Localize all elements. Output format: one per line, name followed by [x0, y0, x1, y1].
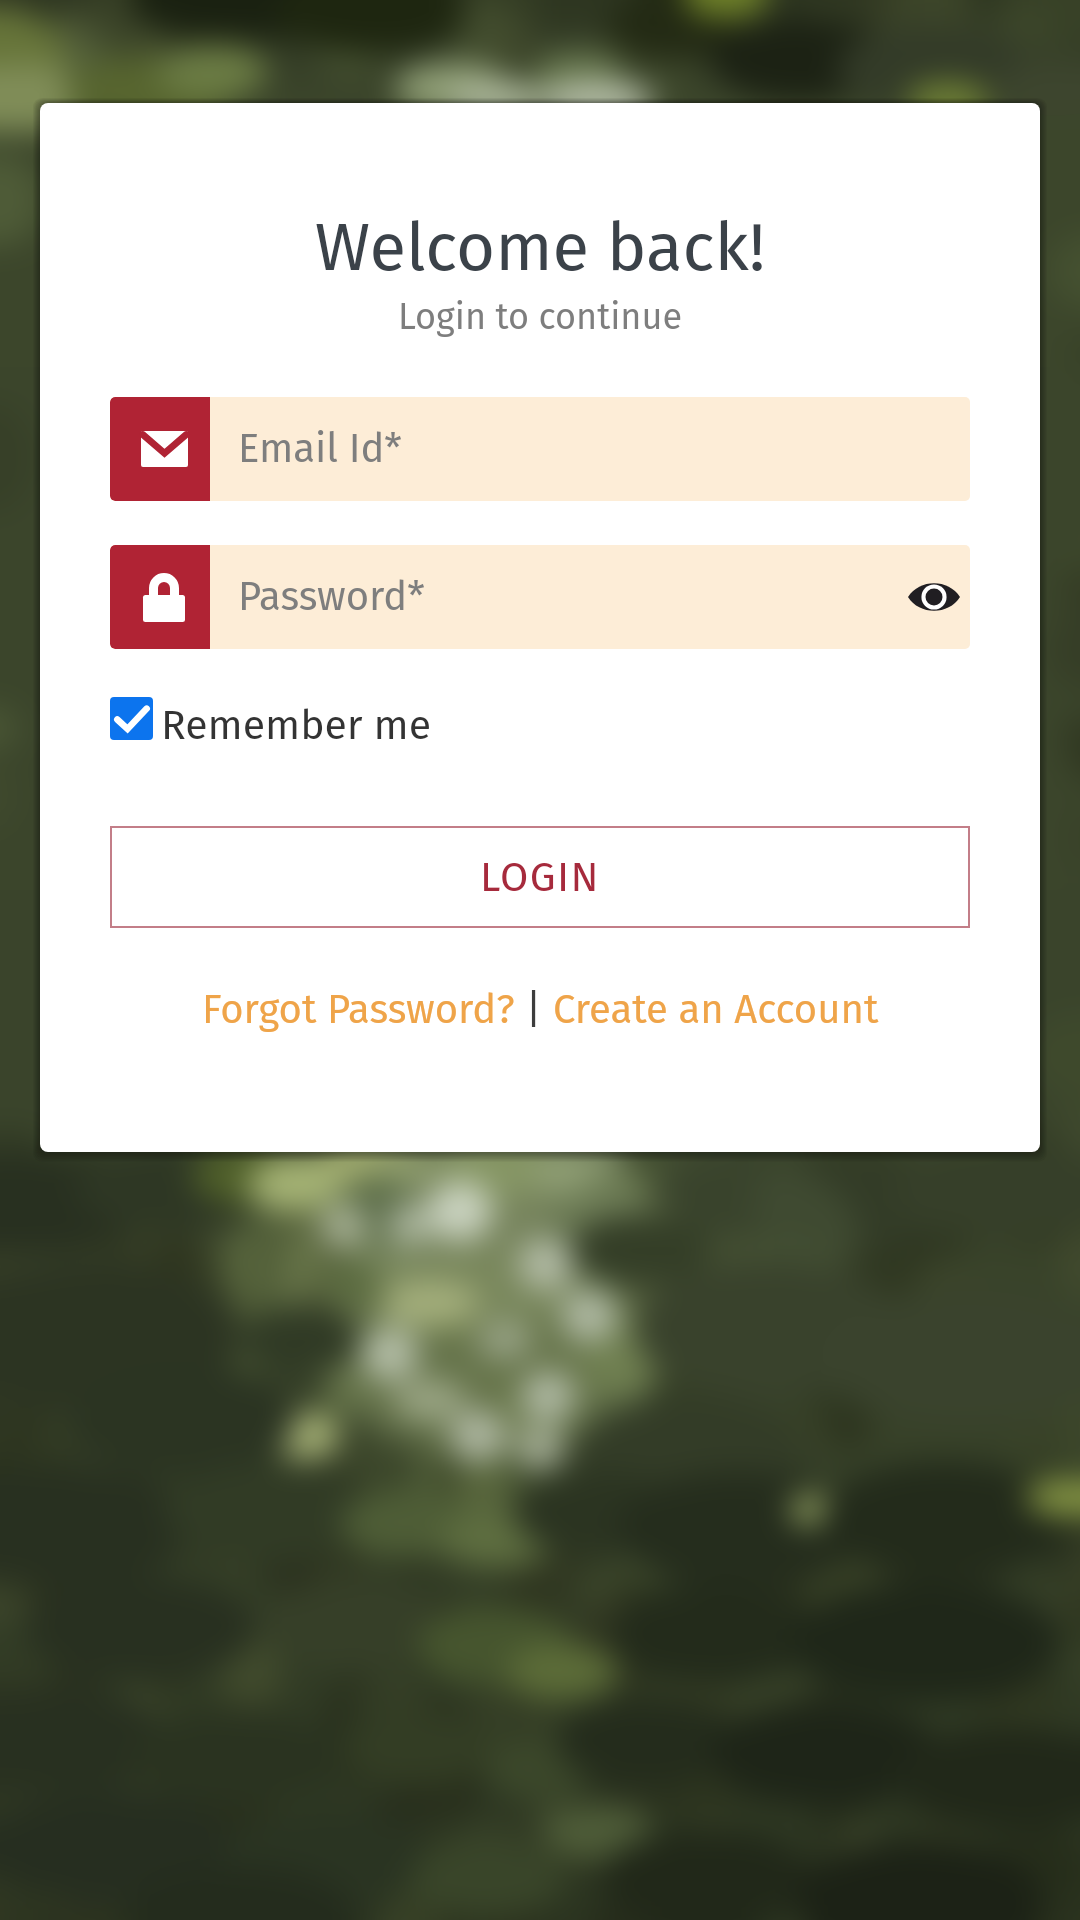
- staticText: LOGIN: [480, 853, 600, 902]
- button[interactable]: LOGIN: [110, 826, 970, 928]
- button[interactable]: Show password: [898, 545, 970, 649]
- staticText: Email Id*: [238, 425, 970, 473]
- button[interactable]: Email Id*: [110, 397, 970, 501]
- staticText: Login to continue: [40, 295, 1040, 338]
- staticText: Remember me: [161, 701, 432, 750]
- button[interactable]: Forgot Password?: [202, 978, 515, 1042]
- button[interactable]: Create an Account: [553, 978, 879, 1042]
- staticText: Welcome back!: [40, 207, 1040, 287]
- staticText: |: [515, 986, 553, 1034]
- button[interactable]: Remember me: [110, 692, 432, 744]
- staticText: Forgot Password?: [202, 986, 515, 1034]
- staticText: Create an Account: [553, 986, 879, 1034]
- button[interactable]: Password*: [110, 545, 970, 649]
- staticText: Password*: [238, 573, 898, 621]
